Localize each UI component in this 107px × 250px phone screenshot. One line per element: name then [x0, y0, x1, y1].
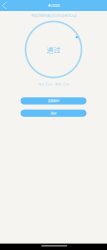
staticText: 通过: [46, 45, 60, 54]
button[interactable]: 查看解析: [20, 97, 86, 104]
staticText: 确定: [50, 111, 56, 116]
button[interactable]: 返回: [0, 0, 11, 11]
button[interactable]: 确定: [20, 110, 86, 117]
staticText: 考试成绩: [47, 3, 59, 8]
staticText: 恭喜您顺利通过本次科目考试认证: [31, 13, 76, 18]
staticText: 得分 85分 用时 12分: [38, 82, 69, 86]
staticText: 查看解析: [47, 98, 59, 103]
